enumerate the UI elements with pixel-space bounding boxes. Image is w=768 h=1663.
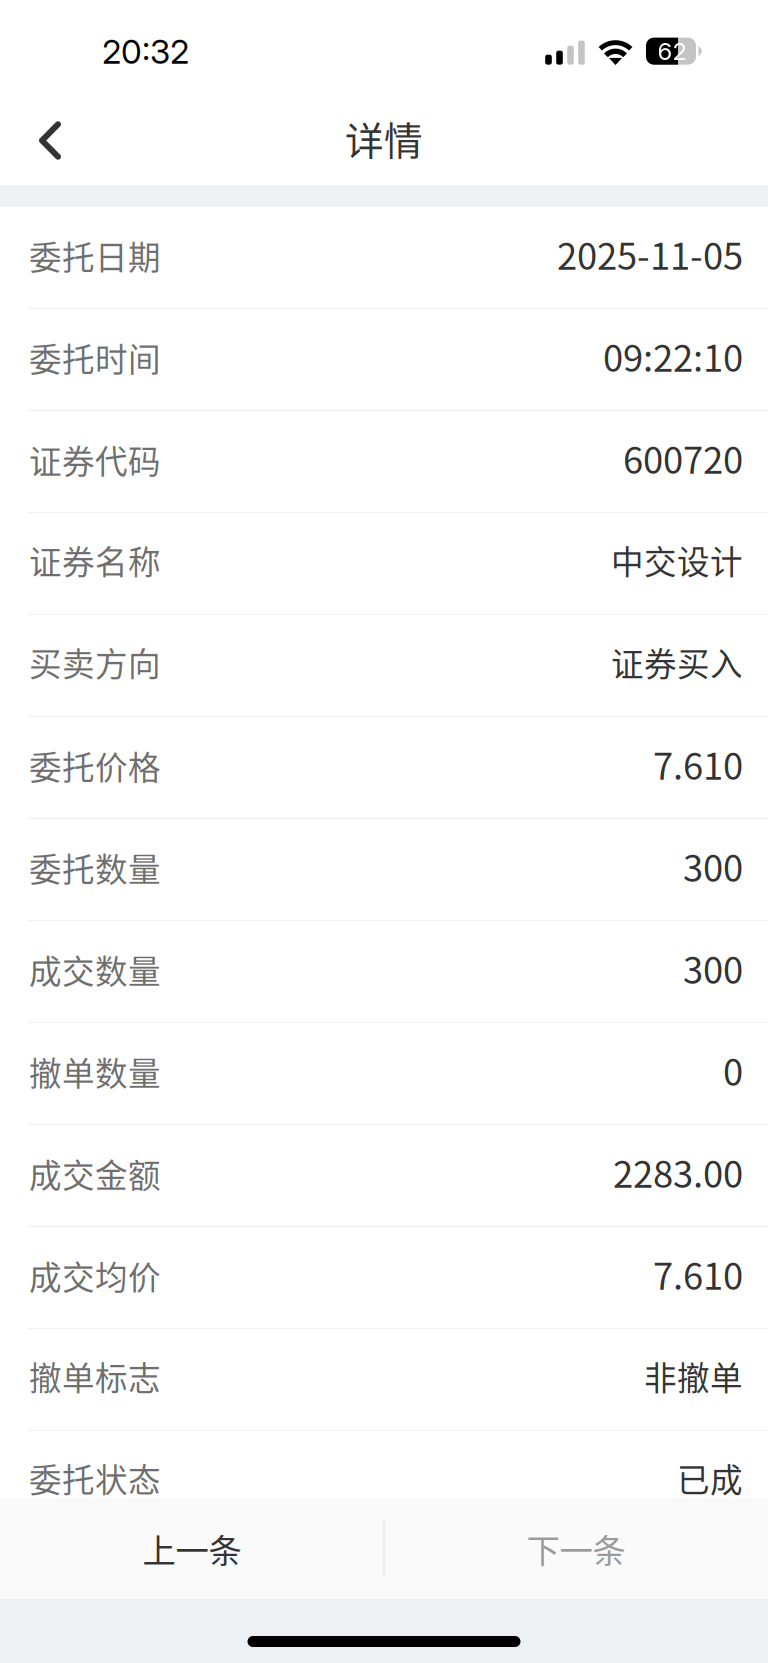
staticText: 300 <box>683 942 743 994</box>
staticText: 成交数量 <box>29 946 161 993</box>
staticText: 撤单数量 <box>29 1048 161 1095</box>
staticText: 证券名称 <box>29 536 161 583</box>
staticText: 2025-11-05 <box>557 228 743 280</box>
staticText: 成交均价 <box>29 1252 161 1299</box>
staticText: 已成 <box>677 1454 743 1501</box>
staticText: 7.610 <box>653 1248 743 1300</box>
staticText: 成交金额 <box>29 1150 161 1197</box>
staticText: 中交设计 <box>611 536 743 583</box>
button[interactable]: 上一条 <box>0 1498 384 1599</box>
staticText: 09:22:10 <box>603 330 743 382</box>
staticText: 证券买入 <box>611 638 743 685</box>
staticText: 300 <box>683 840 743 892</box>
staticText: 62 <box>657 37 686 66</box>
staticText: 委托数量 <box>29 844 161 891</box>
staticText: 0 <box>723 1044 743 1096</box>
staticText: 600720 <box>623 432 743 484</box>
staticText: 20:32 <box>102 31 189 72</box>
staticText: 委托状态 <box>29 1454 161 1501</box>
staticText: 非撤单 <box>644 1352 743 1399</box>
staticText: 7.610 <box>653 738 743 790</box>
staticText: 上一条 <box>142 1524 241 1573</box>
staticText: 委托时间 <box>29 334 161 381</box>
staticText: 委托价格 <box>29 742 161 789</box>
staticText: 买卖方向 <box>29 638 161 685</box>
button[interactable]: 下一条 <box>384 1498 768 1599</box>
staticText: 详情 <box>345 110 423 166</box>
staticText: 下一条 <box>526 1524 625 1573</box>
staticText: 2283.00 <box>613 1146 743 1198</box>
staticText: 委托日期 <box>29 232 161 279</box>
staticText: 撤单标志 <box>29 1352 161 1399</box>
button[interactable]: 返回 <box>0 92 86 185</box>
staticText: 证券代码 <box>29 436 161 483</box>
